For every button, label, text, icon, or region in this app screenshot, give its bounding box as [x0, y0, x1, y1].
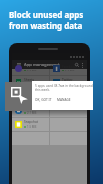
button[interactable]: Spotify: [12, 90, 49, 103]
staticText: Spotify: [24, 92, 35, 96]
staticText: 5.1 MB: [65, 70, 75, 71]
staticText: Facebook: [62, 65, 77, 69]
staticText: 4.1 MB: [27, 83, 37, 87]
staticText: Block unused apps: [9, 9, 84, 20]
staticText: 1.5 MB: [27, 125, 37, 129]
staticText: 3.3 MB: [27, 97, 37, 101]
staticText: Snapchat: [24, 120, 38, 124]
staticText: Viber: [24, 65, 32, 69]
staticText: MANAGE: [57, 98, 71, 102]
staticText: Twitter: [62, 78, 73, 82]
button[interactable]: [50, 90, 87, 103]
staticText: Skype: [24, 106, 33, 110]
staticText: App management: [24, 62, 60, 68]
staticText: 1.1 MB: [65, 83, 75, 87]
button[interactable]: Snapchat: [12, 118, 49, 131]
button[interactable]: Twitter: [50, 76, 87, 89]
staticText: from wasting data: [9, 20, 83, 31]
button[interactable]: Sheets: [12, 76, 49, 89]
button[interactable]: Search: [74, 62, 79, 67]
button[interactable]: Facebook: [50, 69, 87, 75]
button[interactable]: More options: [80, 62, 85, 67]
staticText: Sheets: [24, 78, 34, 82]
button[interactable]: MANAGE: [57, 98, 71, 102]
staticText: 5 apps used 38.7мв in the background: [35, 84, 93, 88]
button[interactable]: Screenshot tool: [5, 82, 32, 111]
staticText: 2.1 MB: [27, 111, 37, 115]
staticText: OK, GOT IT: [35, 98, 52, 102]
staticText: 5.3 MB: [27, 70, 37, 71]
staticText: this week.: [35, 88, 50, 92]
button[interactable]: [50, 104, 87, 117]
button[interactable]: Menu: [16, 62, 21, 67]
button[interactable]: OK, GOT IT: [35, 98, 52, 102]
button[interactable]: Viber: [12, 69, 49, 75]
button[interactable]: Skype: [12, 104, 49, 117]
